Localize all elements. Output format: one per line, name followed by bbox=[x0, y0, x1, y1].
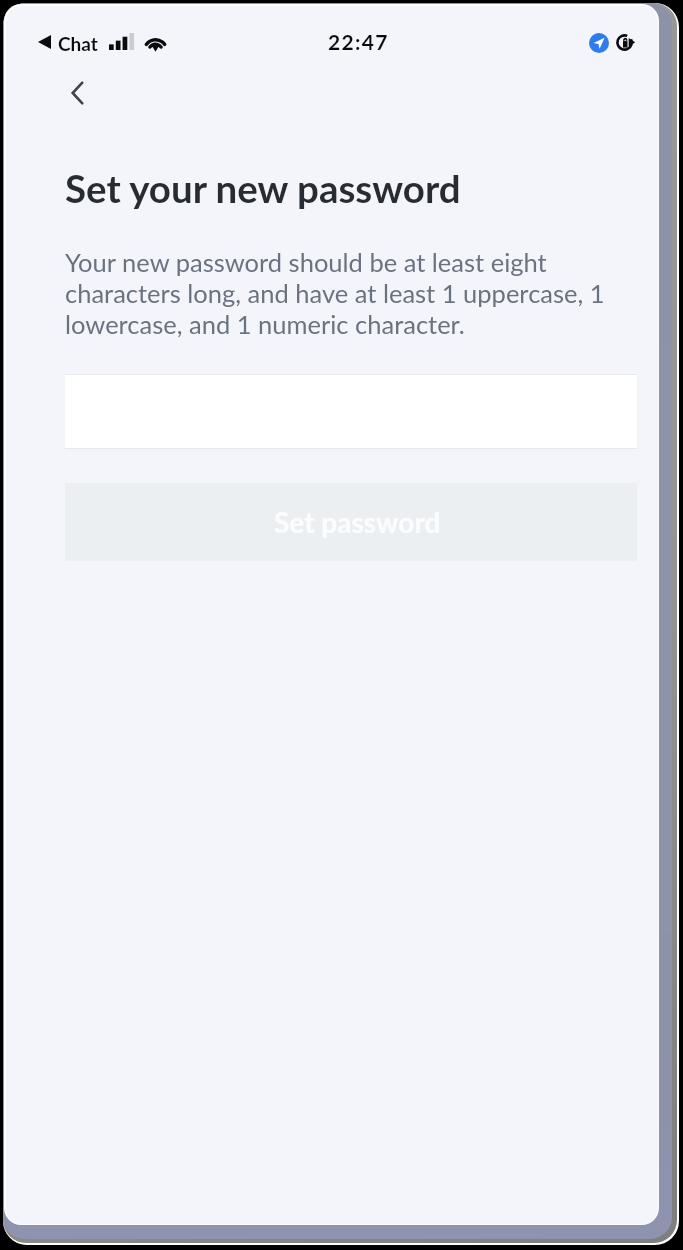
staticText: 22:47 bbox=[328, 29, 389, 54]
button[interactable]: Back bbox=[47, 62, 107, 124]
staticText: Chat bbox=[58, 32, 98, 55]
button[interactable] bbox=[65, 374, 637, 449]
staticText: Set password bbox=[274, 505, 441, 539]
staticText: Set your new password bbox=[65, 165, 461, 211]
staticText: Your new password should be at least eig… bbox=[65, 247, 635, 340]
